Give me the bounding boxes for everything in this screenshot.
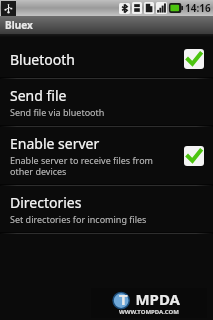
staticText: T MPDA — [119, 289, 180, 309]
staticText: Bluex — [5, 18, 33, 32]
staticText: Directories — [10, 193, 82, 212]
button[interactable]: Toggle — [183, 145, 205, 167]
staticText: Enable server — [10, 134, 100, 153]
button[interactable]: Directories — [0, 186, 213, 232]
staticText: Send file via bluetooth — [10, 106, 105, 118]
staticText: WWW.TOMPDA.COM — [119, 308, 179, 316]
button[interactable]: Bluetooth — [0, 41, 213, 77]
button[interactable]: Toggle — [183, 48, 205, 70]
staticText: Set directories for incoming files — [10, 213, 147, 225]
staticText: 14:16 — [185, 1, 211, 15]
button[interactable]: Send file — [0, 79, 213, 125]
button[interactable]: Enable server — [0, 127, 213, 184]
staticText: Enable server to receive files from othe… — [10, 154, 154, 177]
staticText: Bluetooth — [10, 50, 75, 69]
staticText: Send file — [10, 86, 67, 105]
